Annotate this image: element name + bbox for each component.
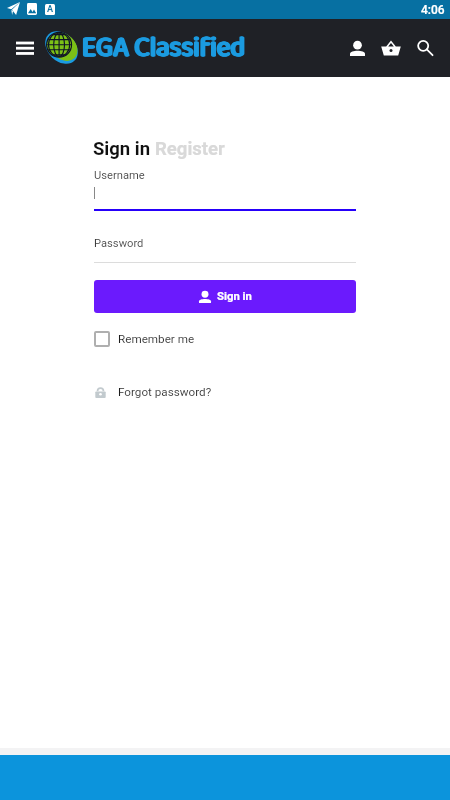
button[interactable]: Remember me <box>94 331 195 347</box>
button[interactable]: Sign in <box>94 280 356 313</box>
staticText: Password <box>94 237 144 250</box>
staticText: Username <box>94 169 145 182</box>
button[interactable]: Account <box>340 31 374 65</box>
staticText: Sign in <box>217 290 252 303</box>
staticText: EGA Classified <box>82 24 246 72</box>
staticText: EGA Classified <box>81 24 245 72</box>
staticText: Remember me <box>118 332 195 346</box>
button[interactable]: Register <box>155 138 225 160</box>
button[interactable]: Forgot password? <box>94 385 212 399</box>
staticText: EGA Classified <box>82 24 246 72</box>
button[interactable]: Search <box>408 31 442 65</box>
staticText: EGA Classified <box>83 24 247 72</box>
staticText: Forgot password? <box>118 385 212 399</box>
button[interactable]: Menu <box>11 34 39 62</box>
button[interactable]: Cart <box>374 31 408 65</box>
button[interactable]: Sign in <box>93 138 151 160</box>
staticText: A <box>47 4 54 15</box>
staticText: 4:06 <box>421 3 445 17</box>
